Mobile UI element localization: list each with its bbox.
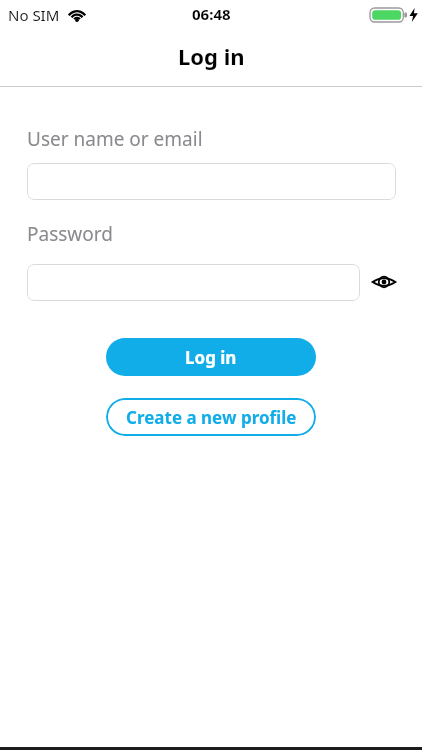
staticText: User name or email xyxy=(27,126,203,152)
button[interactable] xyxy=(27,264,360,301)
staticText: No SIM xyxy=(8,5,60,25)
button[interactable] xyxy=(27,163,396,200)
button[interactable]: Create a new profile xyxy=(106,398,316,436)
staticText: Log in xyxy=(185,346,237,369)
staticText: Password xyxy=(27,221,113,247)
staticText: Create a new profile xyxy=(126,406,297,429)
button[interactable]: Log in xyxy=(106,338,316,376)
staticText: 06:48 xyxy=(192,4,231,24)
button[interactable]: Show password xyxy=(360,258,408,306)
staticText: Log in xyxy=(178,41,245,71)
